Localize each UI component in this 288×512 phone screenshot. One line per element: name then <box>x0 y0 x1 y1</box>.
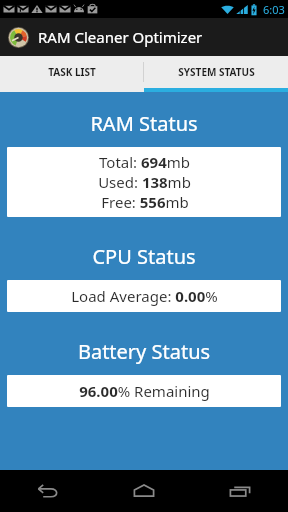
button[interactable]: Recent apps <box>192 470 288 512</box>
button[interactable]: TASK LIST <box>0 56 143 88</box>
staticText: Free: 556mb <box>101 192 189 212</box>
button[interactable]: 96.00% Remaining <box>7 375 281 407</box>
staticText: TASK LIST <box>48 65 96 79</box>
staticText: Total: 694mb <box>99 152 190 172</box>
staticText: Battery Status <box>0 338 288 365</box>
button[interactable]: Load Average: 0.00% <box>7 280 281 312</box>
button[interactable]: Total: 694mb <box>7 147 281 217</box>
button[interactable]: SYSTEM STATUS <box>144 56 288 88</box>
staticText: Used: 138mb <box>98 172 191 192</box>
staticText: 96.00% Remaining <box>79 381 210 401</box>
staticText: Load Average: 0.00% <box>71 286 218 306</box>
staticText: CPU Status <box>0 243 288 270</box>
staticText: RAM Cleaner Optimizer <box>38 27 203 47</box>
staticText: SYSTEM STATUS <box>178 65 255 79</box>
staticText: 6:03 <box>263 2 285 17</box>
staticText: RAM Status <box>0 110 288 137</box>
button[interactable]: Home <box>96 470 192 512</box>
button[interactable]: Back <box>0 470 96 512</box>
